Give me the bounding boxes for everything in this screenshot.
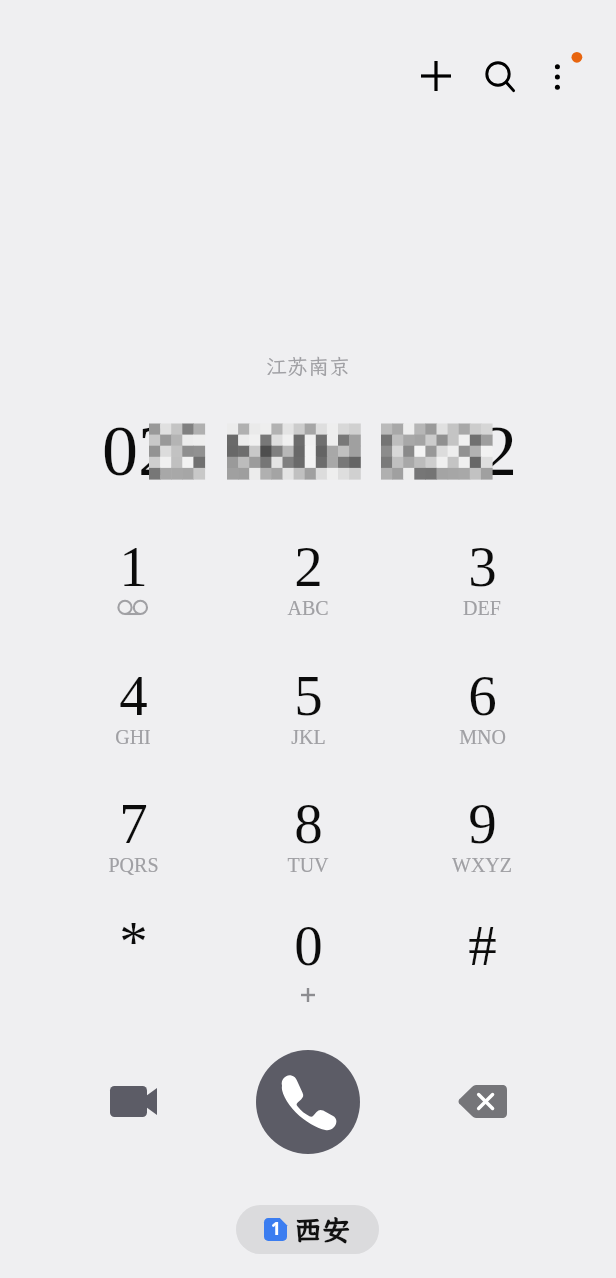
button[interactable]: # (395, 894, 569, 1022)
button[interactable]: 0 (221, 894, 395, 1022)
staticText: 3 (468, 535, 497, 598)
staticText: WXYZ (452, 854, 512, 876)
staticText: 西安 (294, 1211, 351, 1248)
staticText: 2 (294, 535, 323, 598)
staticText: 2 (481, 411, 517, 491)
button[interactable]: 1 (236, 1205, 379, 1254)
button[interactable]: * (46, 894, 220, 1022)
button[interactable]: 5 (221, 644, 395, 772)
button[interactable]: More options (528, 40, 588, 100)
staticText: PQRS (108, 854, 159, 876)
staticText: GHI (115, 726, 151, 748)
staticText: 6 (468, 664, 497, 727)
staticText: 02 (102, 411, 174, 491)
staticText: 7 (119, 792, 148, 855)
staticText: * (119, 910, 148, 973)
button[interactable]: 8 (221, 772, 395, 900)
button[interactable]: Delete (457, 1085, 507, 1118)
staticText: ABC (287, 597, 329, 619)
staticText: DEF (463, 597, 501, 619)
button[interactable]: Search (468, 44, 528, 104)
staticText: 1 (119, 535, 148, 598)
staticText: 4 (119, 664, 148, 727)
staticText: 江苏南京 (266, 352, 350, 380)
button[interactable]: 1 (46, 515, 220, 643)
button[interactable]: 3 (395, 515, 569, 643)
button[interactable]: Add contact (406, 46, 466, 106)
staticText: MNO (459, 726, 506, 748)
button[interactable]: 4 (46, 644, 220, 772)
staticText: TUV (287, 854, 329, 876)
button[interactable]: 2 (221, 515, 395, 643)
staticText: 5 (294, 664, 323, 727)
staticText: 1 (271, 1217, 281, 1240)
staticText: JKL (291, 726, 326, 748)
button[interactable]: Video call (110, 1071, 172, 1133)
button[interactable]: 7 (46, 772, 220, 900)
staticText: # (468, 914, 497, 977)
staticText: 8 (294, 792, 323, 855)
staticText: 9 (468, 792, 497, 855)
staticText: 0 (294, 914, 323, 977)
button[interactable]: Call (256, 1050, 360, 1154)
button[interactable]: 6 (395, 644, 569, 772)
button[interactable]: 9 (395, 772, 569, 900)
